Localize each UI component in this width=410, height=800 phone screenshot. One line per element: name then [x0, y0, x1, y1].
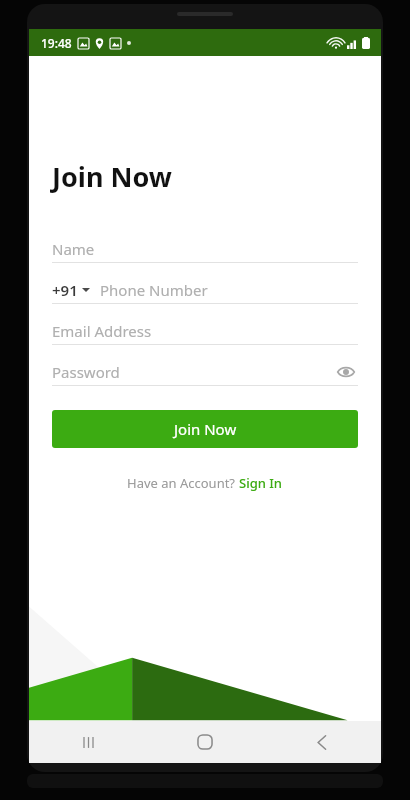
button[interactable]: Email Address: [52, 317, 358, 345]
staticText: Have an Account?: [127, 474, 239, 492]
button[interactable]: Show password: [334, 360, 358, 384]
staticText: Join Now: [52, 158, 172, 195]
button[interactable]: Home: [182, 721, 228, 763]
button[interactable]: Back: [299, 721, 345, 763]
staticText: Email Address: [52, 321, 152, 341]
staticText: Password: [52, 362, 120, 382]
button[interactable]: Join Now: [52, 410, 358, 448]
button[interactable]: Recents: [65, 721, 111, 763]
staticText: 19:48: [41, 35, 72, 51]
staticText: Join Now: [174, 419, 237, 439]
staticText: Name: [52, 239, 95, 259]
button[interactable]: Password: [52, 358, 358, 386]
button[interactable]: Select country code: [52, 276, 358, 304]
staticText: Phone Number: [100, 280, 208, 300]
button[interactable]: Sign In: [239, 474, 283, 492]
button[interactable]: Name: [52, 235, 358, 263]
button[interactable]: Select country code: [52, 280, 90, 300]
staticText: +91: [52, 280, 78, 300]
staticText: Sign In: [239, 474, 283, 492]
